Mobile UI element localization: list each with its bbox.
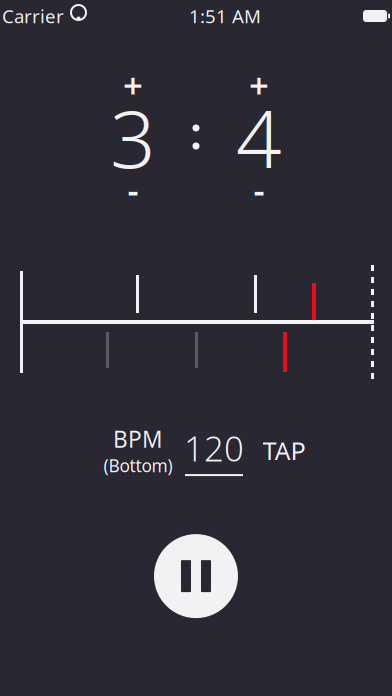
staticText: 4	[236, 84, 282, 190]
button[interactable]: Tempo 120 beats per minute	[177, 429, 251, 473]
staticText: (Bottom)	[103, 454, 172, 477]
staticText: TAP	[262, 434, 305, 467]
button[interactable]: Decrease Beats	[98, 172, 168, 206]
button[interactable]: TAP	[251, 431, 317, 471]
staticText: 3	[110, 84, 156, 190]
staticText: +	[249, 62, 269, 108]
button[interactable]: Increase Beats	[98, 68, 168, 102]
staticText: 1:51 AM	[189, 4, 261, 28]
button[interactable]: Pause	[141, 521, 251, 631]
staticText: BPM	[113, 424, 163, 454]
staticText: 120	[184, 425, 244, 471]
staticText: -	[127, 166, 138, 212]
staticText: -	[253, 166, 264, 212]
button[interactable]: Decrease Note value	[224, 172, 294, 206]
staticText: Carrier	[2, 4, 64, 28]
staticText: +	[123, 62, 143, 108]
button[interactable]: Increase Note value	[224, 68, 294, 102]
